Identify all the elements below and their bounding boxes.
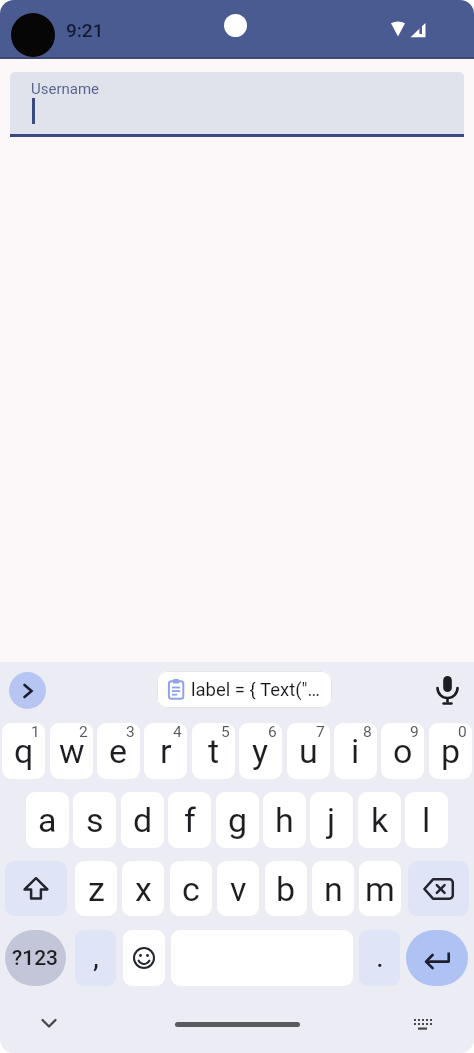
button[interactable]: g xyxy=(216,792,259,848)
button[interactable]: k xyxy=(358,792,401,848)
staticText: . xyxy=(376,939,384,974)
staticText: c xyxy=(182,869,200,909)
button[interactable]: p xyxy=(429,723,472,779)
button[interactable]: d xyxy=(121,792,164,848)
staticText: g xyxy=(228,800,248,840)
button[interactable]: a xyxy=(26,792,69,848)
button[interactable] xyxy=(436,676,459,705)
button[interactable] xyxy=(408,861,469,916)
staticText: w xyxy=(59,731,85,771)
button[interactable]: f xyxy=(168,792,211,848)
button[interactable]: j xyxy=(310,792,353,848)
staticText: 6 xyxy=(268,723,277,741)
staticText: 2 xyxy=(79,723,88,741)
button[interactable]: Username xyxy=(10,72,464,137)
button[interactable]: u xyxy=(287,723,330,779)
staticText: u xyxy=(299,731,318,771)
staticText: 3 xyxy=(126,723,135,741)
button[interactable]: ?123 xyxy=(5,930,66,986)
button[interactable]: i xyxy=(334,723,377,779)
staticText: label = { Text("… xyxy=(191,679,320,701)
staticText: 4 xyxy=(173,723,182,741)
staticText: q xyxy=(14,731,34,771)
staticText: j xyxy=(327,800,336,840)
button[interactable]: e xyxy=(97,723,140,779)
staticText: l xyxy=(422,800,431,840)
staticText: 9 xyxy=(410,723,419,741)
staticText: Username xyxy=(31,80,100,98)
button[interactable]: label = { Text("… xyxy=(157,671,332,708)
button[interactable] xyxy=(9,672,46,709)
button[interactable]: o xyxy=(381,723,424,779)
staticText: b xyxy=(276,869,296,909)
button[interactable]: w xyxy=(50,723,93,779)
staticText: 7 xyxy=(316,723,325,741)
staticText: o xyxy=(393,731,413,771)
staticText: ?123 xyxy=(12,946,59,971)
staticText: e xyxy=(109,731,128,771)
button[interactable]: r xyxy=(144,723,187,779)
staticText: y xyxy=(252,731,269,771)
staticText: n xyxy=(324,869,343,909)
staticText: 8 xyxy=(363,723,372,741)
staticText: d xyxy=(133,800,153,840)
staticText: z xyxy=(88,869,105,909)
button[interactable]: q xyxy=(2,723,45,779)
button[interactable]: l xyxy=(405,792,448,848)
staticText: s xyxy=(86,800,104,840)
staticText: t xyxy=(208,731,220,771)
button[interactable]: . xyxy=(359,930,400,986)
staticText: 1 xyxy=(31,723,40,741)
button[interactable]: v xyxy=(217,861,259,916)
button[interactable]: m xyxy=(359,861,401,916)
button[interactable]: c xyxy=(170,861,212,916)
staticText: x xyxy=(135,869,152,909)
staticText: m xyxy=(365,869,395,909)
staticText: r xyxy=(160,731,172,771)
button[interactable]: x xyxy=(122,861,164,916)
button[interactable]: h xyxy=(263,792,306,848)
button[interactable] xyxy=(5,861,67,916)
staticText: v xyxy=(230,869,247,909)
staticText: h xyxy=(275,800,294,840)
staticText: 9:21 xyxy=(66,19,104,41)
button[interactable]: y xyxy=(239,723,282,779)
staticText: 5 xyxy=(221,723,230,741)
button[interactable] xyxy=(413,1018,433,1031)
button[interactable]: s xyxy=(73,792,116,848)
staticText: k xyxy=(371,800,389,840)
button[interactable]: t xyxy=(192,723,235,779)
button[interactable]: b xyxy=(265,861,307,916)
button[interactable]: n xyxy=(312,861,354,916)
button[interactable]: , xyxy=(75,930,116,986)
staticText: a xyxy=(38,800,57,840)
button[interactable] xyxy=(406,930,468,986)
staticText: 0 xyxy=(458,723,467,741)
staticText: p xyxy=(441,731,461,771)
button[interactable] xyxy=(123,930,165,986)
staticText: i xyxy=(351,731,360,771)
staticText: f xyxy=(184,800,196,840)
button[interactable]: z xyxy=(75,861,117,916)
staticText: , xyxy=(93,939,99,974)
button[interactable] xyxy=(42,1019,56,1028)
